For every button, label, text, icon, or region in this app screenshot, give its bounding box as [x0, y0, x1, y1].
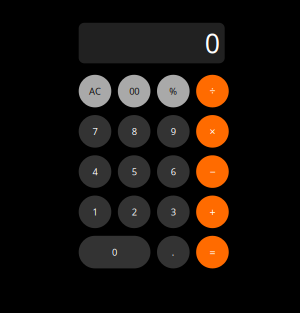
staticText: 0	[205, 25, 220, 61]
staticText: 3	[171, 206, 176, 218]
staticText: 6	[171, 165, 176, 178]
button[interactable]: 0	[79, 236, 150, 268]
staticText: 2	[132, 206, 137, 218]
staticText: ÷	[209, 84, 215, 98]
button[interactable]: 6	[157, 155, 190, 188]
staticText: 9	[171, 125, 176, 138]
staticText: 7	[92, 125, 97, 138]
staticText: 5	[132, 165, 137, 178]
button[interactable]: ÷	[196, 75, 229, 107]
staticText: +	[209, 205, 215, 219]
button[interactable]: −	[196, 155, 229, 188]
button[interactable]: 1	[79, 196, 111, 228]
button[interactable]: 8	[118, 115, 150, 148]
staticText: .	[172, 246, 175, 258]
staticText: 4	[92, 165, 97, 178]
staticText: %	[169, 85, 177, 97]
button[interactable]: AC	[79, 75, 111, 107]
staticText: 00	[129, 85, 139, 97]
button[interactable]: =	[196, 236, 229, 268]
button[interactable]: .	[157, 236, 190, 268]
staticText: −	[209, 164, 215, 179]
button[interactable]: ×	[196, 115, 229, 148]
button[interactable]: 9	[157, 115, 190, 148]
staticText: AC	[89, 85, 101, 97]
staticText: ×	[209, 124, 215, 138]
staticText: =	[209, 245, 215, 259]
button[interactable]: %	[157, 75, 190, 107]
button[interactable]: 4	[79, 155, 111, 188]
button[interactable]: 5	[118, 155, 150, 188]
button[interactable]: 00	[118, 75, 150, 107]
staticText: 8	[132, 125, 137, 138]
button[interactable]: +	[196, 196, 229, 228]
button[interactable]: 2	[118, 196, 150, 228]
button[interactable]: 7	[79, 115, 111, 148]
staticText: 1	[92, 206, 97, 218]
staticText: 0	[112, 246, 117, 258]
button[interactable]: 3	[157, 196, 190, 228]
